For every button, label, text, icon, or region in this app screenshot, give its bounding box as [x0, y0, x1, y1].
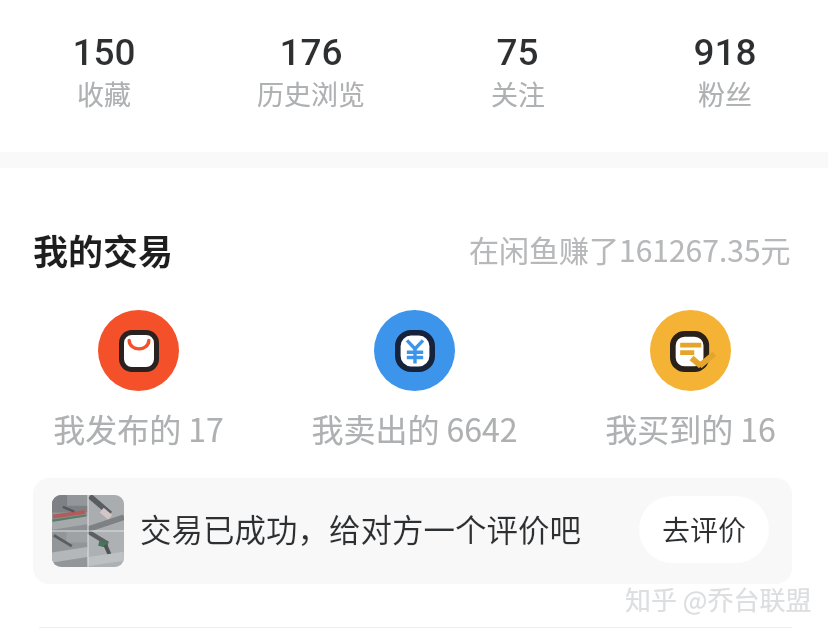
staticText: 粉丝 [698, 74, 752, 113]
staticText: 176 [279, 31, 343, 74]
button[interactable]: 75 [414, 0, 621, 120]
staticText: 75 [496, 31, 539, 74]
staticText: 知乎 @乔台联盟 [625, 580, 812, 618]
staticText: 150 [72, 31, 136, 74]
staticText: 收藏 [77, 74, 131, 113]
staticText: 我发布的 17 [53, 405, 224, 451]
button[interactable]: 去评价 [639, 496, 769, 563]
button[interactable]: 我发布的 [0, 310, 276, 451]
button[interactable]: 我的交易 [33, 224, 174, 275]
button[interactable]: 我买到的 [650, 310, 731, 391]
button[interactable]: 交易已成功，给对方一个评价吧 [33, 478, 792, 584]
button[interactable]: 176 [207, 0, 414, 120]
staticText: 历史浏览 [257, 74, 365, 113]
staticText: 关注 [491, 74, 545, 113]
staticText: 去评价 [662, 509, 747, 550]
staticText: 我卖出的 6642 [311, 405, 518, 451]
button[interactable]: 我发布的 [98, 310, 179, 391]
button[interactable]: 150 [0, 0, 207, 120]
staticText: 我的交易 [33, 224, 174, 275]
staticText: 交易已成功，给对方一个评价吧 [140, 505, 582, 551]
button[interactable]: 我卖出的 [374, 310, 455, 391]
staticText: 在闲鱼赚了161267.35元 [469, 227, 791, 270]
staticText: 918 [693, 31, 757, 74]
button[interactable]: 我卖出的 [276, 310, 552, 451]
staticText: 我买到的 16 [605, 405, 776, 451]
button[interactable]: 我买到的 [552, 310, 828, 451]
button[interactable]: 918 [621, 0, 828, 120]
